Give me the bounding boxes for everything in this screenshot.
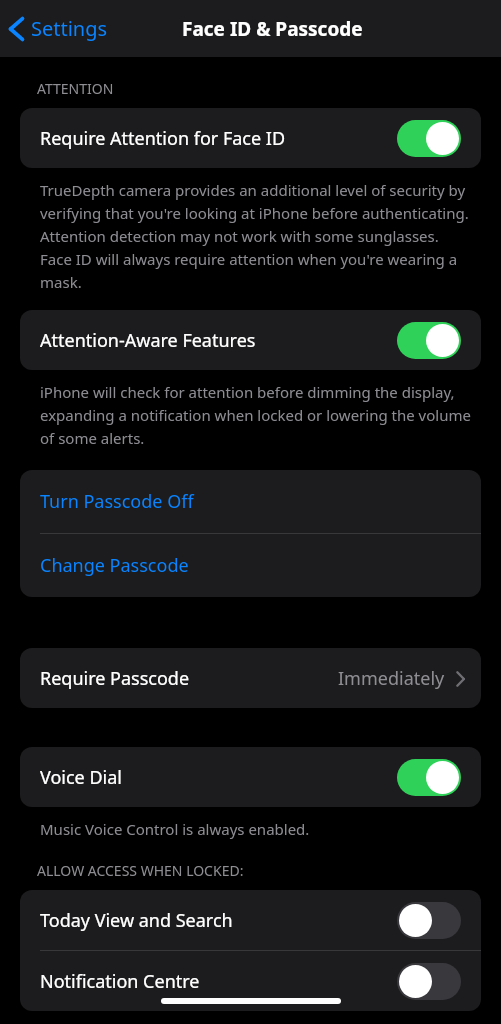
- staticText: ATTENTION: [37, 79, 114, 98]
- button[interactable]: Require Attention for Face ID: [20, 108, 481, 168]
- button[interactable]: Require Passcode: [20, 648, 481, 708]
- button[interactable]: Attention-Aware Features: [20, 310, 481, 370]
- staticText: ALLOW ACCESS WHEN LOCKED:: [37, 861, 244, 880]
- staticText: Immediately: [338, 666, 445, 691]
- staticText: Voice Dial: [40, 765, 122, 790]
- staticText: Music Voice Control is always enabled.: [40, 819, 310, 839]
- button[interactable]: Settings: [0, 7, 120, 50]
- button[interactable]: Switch off: [397, 902, 461, 939]
- staticText: Change Passcode: [40, 553, 189, 578]
- staticText: Require Passcode: [40, 666, 190, 691]
- button[interactable]: Turn Passcode Off: [20, 470, 481, 533]
- staticText: TrueDepth camera provides an additional …: [40, 180, 471, 292]
- staticText: Today View and Search: [40, 908, 233, 933]
- button[interactable]: Switch on: [397, 759, 461, 796]
- staticText: Attention-Aware Features: [40, 328, 256, 353]
- button[interactable]: Notification Centre: [20, 951, 481, 1011]
- button[interactable]: Today View and Search: [20, 890, 481, 950]
- button[interactable]: Voice Dial: [20, 747, 481, 807]
- button[interactable]: Switch on: [397, 120, 461, 157]
- staticText: Require Attention for Face ID: [40, 126, 286, 151]
- button[interactable]: Switch on: [397, 322, 461, 359]
- button[interactable]: Switch off: [397, 963, 461, 1000]
- staticText: iPhone will check for attention before d…: [40, 382, 471, 448]
- button[interactable]: Change Passcode: [20, 534, 481, 597]
- staticText: Face ID & Passcode: [182, 16, 363, 42]
- staticText: Settings: [31, 15, 108, 42]
- staticText: Notification Centre: [40, 969, 200, 994]
- staticText: Turn Passcode Off: [40, 489, 194, 514]
